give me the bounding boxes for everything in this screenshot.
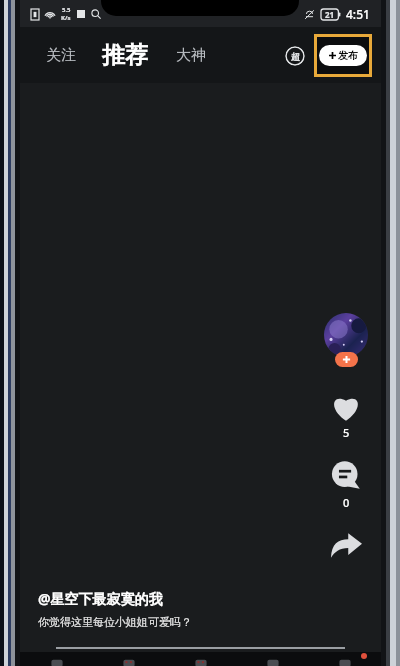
staticText: 4:51 xyxy=(346,6,370,22)
staticText: 0 xyxy=(343,495,350,510)
button[interactable]: 大神 xyxy=(172,40,210,71)
staticText: 大神 xyxy=(176,46,206,65)
button[interactable]: 超级会员 xyxy=(285,46,305,66)
button[interactable]: 点赞 5 xyxy=(326,389,366,443)
staticText: 推荐 xyxy=(102,41,148,70)
staticText: 5 xyxy=(343,425,350,440)
button[interactable]: 关注 xyxy=(42,40,80,71)
staticText: 你觉得这里每位小姐姐可爱吗？ xyxy=(38,615,192,629)
staticText: @星空下最寂寞的我 xyxy=(38,589,163,608)
button[interactable]: 导航 2 xyxy=(93,652,165,666)
button[interactable]: 发布 xyxy=(314,34,372,77)
staticText: 关注 xyxy=(46,46,76,65)
button[interactable]: 导航 1 xyxy=(20,652,93,666)
button[interactable]: 评论 0 xyxy=(327,457,365,513)
staticText: K/s xyxy=(61,14,71,22)
staticText: 超 xyxy=(291,51,300,62)
button[interactable]: 用户头像，关注 xyxy=(322,313,370,367)
button[interactable]: 分享 xyxy=(327,529,365,561)
staticText: 21 xyxy=(325,9,335,20)
button[interactable]: 导航 5 xyxy=(309,652,381,666)
button[interactable]: 推荐 xyxy=(98,39,152,72)
button[interactable]: 导航 3 xyxy=(165,652,237,666)
staticText: 发布 xyxy=(338,49,358,62)
staticText: 5.5 xyxy=(62,6,71,14)
button[interactable]: 导航 4 xyxy=(237,652,309,666)
